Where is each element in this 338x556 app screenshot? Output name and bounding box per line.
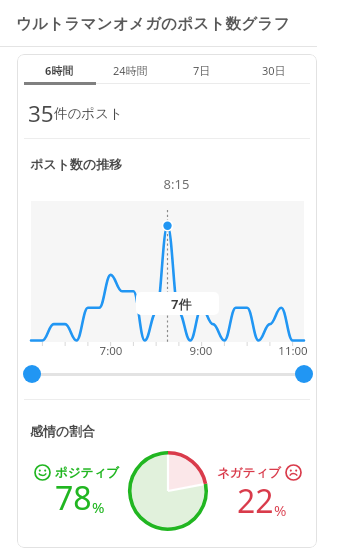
staticText: % (92, 497, 105, 517)
staticText: 7件 (171, 295, 192, 313)
staticText: 8:15 (159, 175, 194, 193)
staticText: ポジティブ (55, 465, 119, 481)
staticText: ネガティブ (217, 465, 281, 481)
button[interactable]: 30日 (238, 56, 310, 85)
staticText: 11:00 (275, 343, 311, 359)
button[interactable]: 6時間 (24, 56, 95, 85)
staticText: 22 (237, 479, 274, 523)
button[interactable]: Range end (295, 365, 313, 383)
staticText: 78 (55, 476, 92, 520)
button[interactable]: 24時間 (95, 56, 166, 85)
staticText: 7日 (193, 63, 211, 78)
staticText: ウルトラマンオメガのポスト数グラフ (16, 14, 290, 34)
staticText: 件のポスト (54, 105, 123, 122)
staticText: 24時間 (113, 63, 148, 78)
staticText: 35 (28, 98, 54, 126)
staticText: % (274, 500, 287, 520)
button[interactable]: Range start (23, 365, 41, 383)
staticText: 7:00 (93, 343, 129, 359)
button[interactable]: 7日 (166, 56, 238, 85)
staticText: ポスト数の推移 (30, 156, 123, 172)
staticText: 6時間 (45, 63, 74, 78)
staticText: 感情の割合 (30, 423, 96, 439)
staticText: 30日 (262, 63, 286, 78)
staticText: 9:00 (183, 343, 219, 359)
